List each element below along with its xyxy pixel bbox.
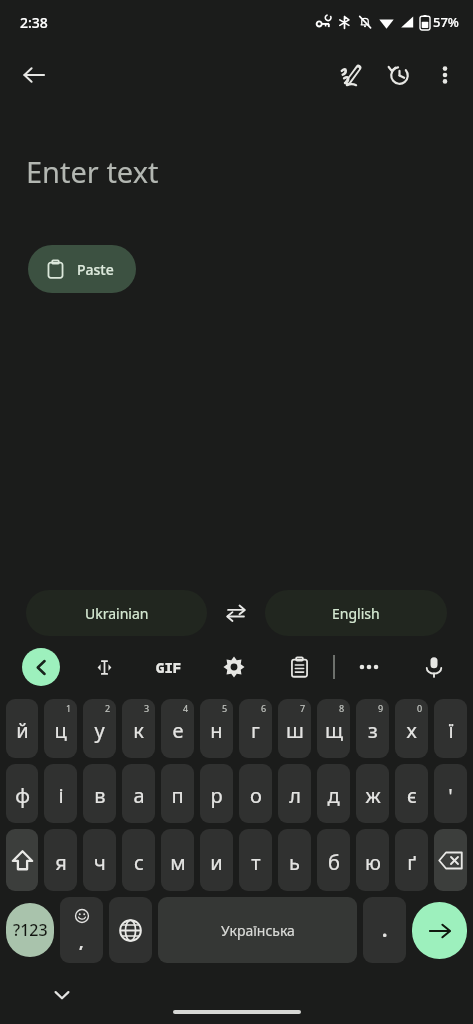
button[interactable]: ' [434,764,467,823]
staticText: GIF [156,658,182,677]
staticText: 9 [378,702,384,714]
button[interactable]: More [348,646,390,688]
staticText: ю [365,849,381,876]
button[interactable]: є [395,764,428,823]
button[interactable]: т [239,829,272,891]
staticText: ь [289,849,300,876]
button[interactable]: о [239,764,272,823]
staticText: е [172,717,184,744]
button[interactable]: Expand toolbar [22,648,60,686]
staticText: л [289,782,301,809]
staticText: , [79,931,84,953]
button[interactable]: Shift [6,829,38,891]
staticText: щ [325,717,343,744]
staticText: і [58,782,64,809]
button[interactable]: Emoji and comma [60,897,103,963]
staticText: Paste [77,260,114,279]
button[interactable]: Enter [412,902,467,959]
button[interactable]: ?123 [6,903,54,957]
button[interactable]: л [278,764,311,823]
staticText: є [407,782,417,809]
button[interactable]: з [356,699,389,758]
button[interactable]: Ukrainian [26,590,207,636]
staticText: Українська [221,921,295,940]
button[interactable]: Back [10,51,58,99]
staticText: . [382,917,388,943]
button[interactable]: ґ [395,829,428,891]
staticText: 5 [222,702,228,714]
button[interactable]: д [317,764,350,823]
button[interactable]: і [44,764,77,823]
staticText: т [251,849,261,876]
staticText: 0 [417,702,423,714]
staticText: 2:38 [20,13,48,32]
button[interactable]: Settings [213,646,255,688]
staticText: б [328,849,340,876]
button[interactable]: History [375,51,423,99]
button[interactable]: в [83,764,116,823]
button[interactable]: Text editing [83,646,125,688]
button[interactable]: я [44,829,77,891]
button[interactable]: Hide keyboard [44,977,80,1013]
button[interactable]: ч [83,829,116,891]
button[interactable]: ф [6,764,38,823]
button[interactable]: Swap languages [207,590,265,636]
button[interactable]: х [395,699,428,758]
button[interactable]: б [317,829,350,891]
button[interactable]: English [265,590,447,636]
staticText: р [210,782,223,809]
staticText: я [55,849,67,876]
button[interactable]: к [122,699,155,758]
button[interactable]: Change keyboard language [109,897,152,963]
button[interactable]: GIF [148,646,190,688]
staticText: ф [15,782,30,809]
staticText: г [251,717,260,744]
button[interactable]: Clipboard [278,646,320,688]
button[interactable]: п [161,764,194,823]
button[interactable]: й [6,699,38,758]
button[interactable]: м [161,829,194,891]
staticText: й [16,717,29,744]
button[interactable]: е [161,699,194,758]
staticText: ї [448,717,454,744]
button[interactable]: с [122,829,155,891]
staticText: ж [365,782,381,809]
staticText: English [332,604,380,623]
button[interactable]: ц [44,699,77,758]
staticText: 2 [105,702,111,714]
button[interactable]: ж [356,764,389,823]
button[interactable]: р [200,764,233,823]
staticText: с [134,849,144,876]
staticText: Ukrainian [85,604,149,623]
staticText: Enter text [26,152,159,191]
button[interactable]: а [122,764,155,823]
staticText: х [406,717,417,744]
staticText: м [170,849,186,876]
staticText: з [368,717,378,744]
button[interactable]: ю [356,829,389,891]
button[interactable]: Enter text [26,152,473,191]
button[interactable]: Handwriting [327,51,375,99]
button[interactable]: Paste [28,245,136,293]
button[interactable]: Backspace [434,829,467,891]
button[interactable]: ї [434,699,467,758]
button[interactable]: г [239,699,272,758]
button[interactable]: Українська [158,897,357,963]
staticText: у [94,717,105,744]
button[interactable]: н [200,699,233,758]
button[interactable]: More options [423,53,467,97]
button[interactable]: у [83,699,116,758]
button[interactable]: щ [317,699,350,758]
button[interactable]: ь [278,829,311,891]
staticText: 8 [339,702,345,714]
staticText: ?123 [13,919,48,941]
staticText: ц [54,717,67,744]
staticText: ч [94,849,106,876]
button[interactable]: . [363,897,406,963]
staticText: ' [448,782,453,809]
button[interactable]: ш [278,699,311,758]
staticText: 1 [66,702,72,714]
button[interactable]: Voice input [413,646,455,688]
staticText: и [210,849,223,876]
button[interactable]: и [200,829,233,891]
